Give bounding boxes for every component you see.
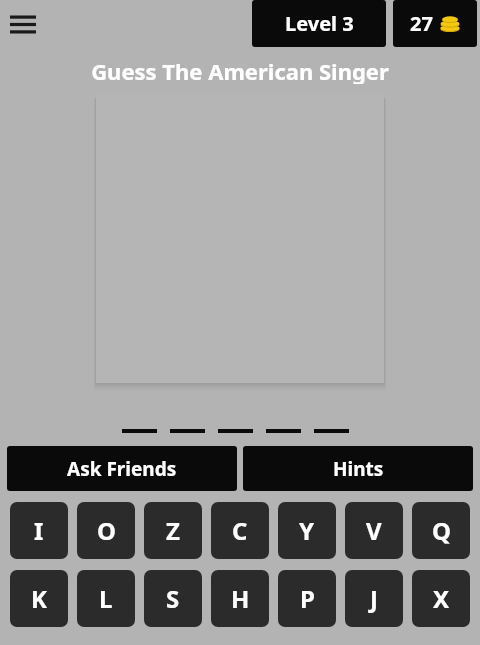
- staticText: V: [366, 514, 382, 547]
- button[interactable]: L: [77, 570, 135, 627]
- button[interactable]: S: [144, 570, 202, 627]
- staticText: Z: [166, 514, 180, 547]
- staticText: X: [433, 582, 450, 615]
- staticText: Ask Friends: [67, 456, 177, 482]
- staticText: O: [97, 514, 116, 547]
- button[interactable]: J: [345, 570, 403, 627]
- button[interactable]: Q: [412, 502, 470, 559]
- staticText: K: [31, 582, 47, 615]
- button[interactable]: P: [278, 570, 336, 627]
- button[interactable]: H: [211, 570, 269, 627]
- staticText: Level 3: [285, 10, 354, 37]
- button[interactable]: 27: [393, 0, 477, 47]
- button[interactable]: C: [211, 502, 269, 559]
- button[interactable]: Hints: [243, 446, 473, 491]
- staticText: Q: [432, 514, 451, 547]
- button[interactable]: I: [10, 502, 68, 559]
- staticText: Guess The American Singer: [91, 56, 389, 84]
- button[interactable]: Level 3: [252, 0, 386, 47]
- button[interactable]: Z: [144, 502, 202, 559]
- staticText: H: [231, 582, 250, 615]
- button[interactable]: X: [412, 570, 470, 627]
- button[interactable]: V: [345, 502, 403, 559]
- staticText: L: [99, 582, 113, 615]
- button[interactable]: Y: [278, 502, 336, 559]
- staticText: S: [166, 582, 180, 615]
- staticText: C: [232, 514, 248, 547]
- staticText: I: [34, 514, 44, 547]
- button[interactable]: Menu: [0, 0, 46, 48]
- staticText: J: [370, 582, 378, 615]
- staticText: P: [300, 582, 315, 615]
- staticText: 27: [410, 10, 433, 37]
- staticText: Y: [299, 514, 315, 547]
- button[interactable]: Ask Friends: [7, 446, 237, 491]
- button[interactable]: K: [10, 570, 68, 627]
- button[interactable]: O: [77, 502, 135, 559]
- staticText: Hints: [333, 456, 384, 482]
